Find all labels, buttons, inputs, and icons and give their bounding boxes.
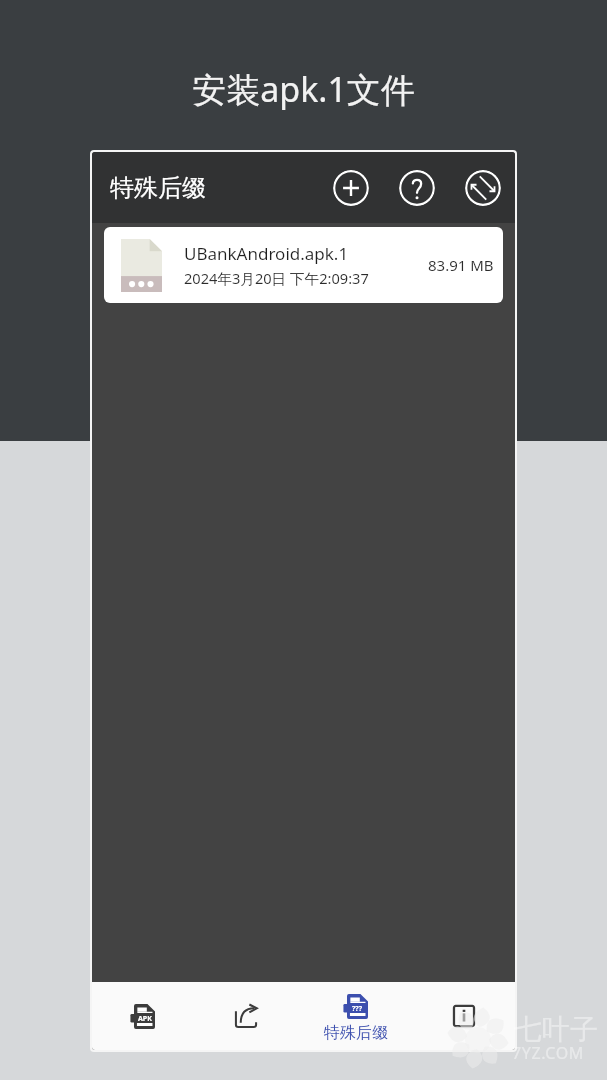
button[interactable]: Info: [409, 982, 515, 1050]
button[interactable]: Add: [333, 170, 369, 206]
button[interactable]: Sort: [465, 170, 501, 206]
button[interactable]: Help: [399, 170, 435, 206]
staticText: 安装apk.1文件: [192, 66, 415, 112]
staticText: 特殊后缀: [324, 1023, 388, 1043]
staticText: APK: [138, 1014, 152, 1024]
staticText: 83.91 MB: [428, 255, 494, 275]
staticText: 七叶子: [514, 1012, 598, 1047]
button[interactable]: UBankAndroid.apk.1: [104, 227, 503, 303]
button[interactable]: Share: [197, 982, 303, 1050]
staticText: ???: [352, 1004, 363, 1014]
staticText: 特殊后缀: [110, 173, 206, 203]
staticText: 7YZ.COM: [512, 1042, 584, 1064]
staticText: 2024年3月20日 下午2:09:37: [184, 268, 369, 288]
button[interactable]: APK files: [92, 982, 197, 1050]
staticText: UBankAndroid.apk.1: [184, 242, 349, 265]
button[interactable]: ???: [303, 982, 409, 1050]
